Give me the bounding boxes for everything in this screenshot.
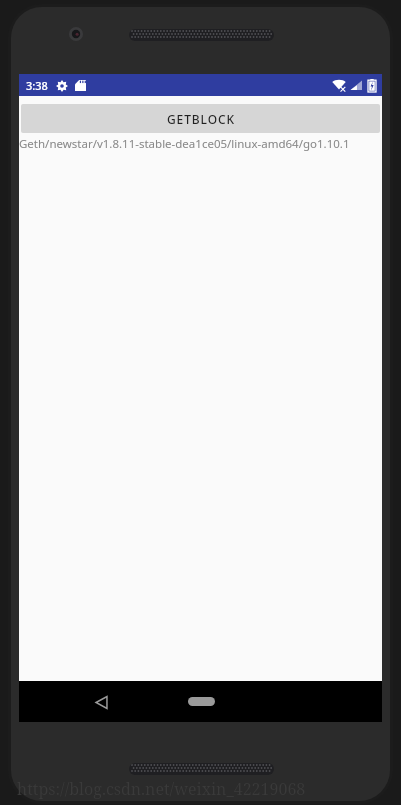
button[interactable]: Back — [81, 682, 121, 722]
staticText: https://blog.csdn.net/weixin_42219068 — [17, 778, 306, 800]
staticText: Geth/newstar/v1.8.11-stable-dea1ce05/lin… — [19, 136, 382, 152]
staticText: GETBLOCK — [167, 111, 235, 127]
button[interactable]: Home — [179, 681, 223, 722]
button[interactable]: GETBLOCK — [21, 104, 380, 133]
staticText: 3:38 — [26, 78, 48, 93]
